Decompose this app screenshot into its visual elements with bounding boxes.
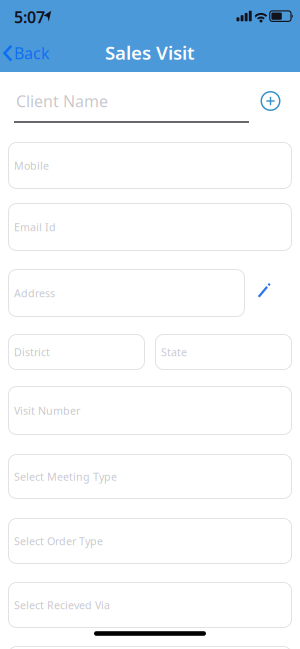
button[interactable] <box>8 646 292 649</box>
staticText: Client Name <box>16 90 108 112</box>
staticText: Select Meeting Type <box>14 469 117 484</box>
button[interactable]: Mobile <box>8 142 292 189</box>
staticText: Mobile <box>14 158 49 173</box>
staticText: Email Id <box>14 220 56 234</box>
button[interactable]: Visit Number <box>8 386 292 435</box>
staticText: Back <box>14 42 50 64</box>
button[interactable]: Edit Address <box>256 283 272 299</box>
button[interactable]: State <box>155 334 292 370</box>
staticText: 5:07 <box>14 6 45 28</box>
staticText: Sales Visit <box>105 40 195 65</box>
button[interactable]: Address <box>8 269 245 317</box>
button[interactable]: Select Recieved Via <box>8 582 292 628</box>
staticText: State <box>161 345 187 359</box>
staticText: District <box>14 345 50 359</box>
button[interactable]: District <box>8 334 145 370</box>
staticText: Address <box>14 286 55 300</box>
button[interactable]: Select Order Type <box>8 518 292 564</box>
button[interactable]: Add Client <box>260 91 280 111</box>
button[interactable]: Back <box>0 42 56 64</box>
staticText: Select Order Type <box>14 534 103 548</box>
staticText: Select Recieved Via <box>14 598 110 612</box>
button[interactable]: Email Id <box>8 203 292 251</box>
staticText: Visit Number <box>14 403 80 418</box>
button[interactable]: Select Meeting Type <box>8 454 292 499</box>
